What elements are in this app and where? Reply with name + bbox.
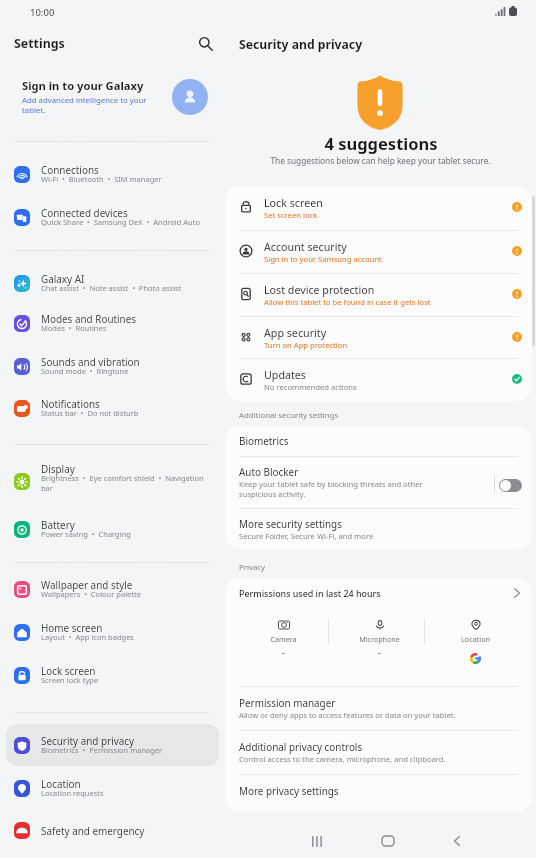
staticText: Lock screen bbox=[41, 664, 96, 677]
staticText: Additional security settings bbox=[239, 410, 339, 421]
staticText: App security bbox=[264, 326, 327, 341]
staticText: Security and privacy bbox=[239, 36, 363, 53]
staticText: Galaxy AI bbox=[41, 272, 85, 285]
staticText: Sign in to your Galaxy bbox=[22, 78, 144, 93]
staticText: Secure Folder, Secure Wi-Fi, and more bbox=[239, 531, 374, 541]
button[interactable]: Lock screen bbox=[225, 186, 532, 230]
staticText: Layout • App icon badges bbox=[41, 632, 219, 642]
button[interactable]: Biometrics bbox=[225, 426, 532, 455]
staticText: Connected devices bbox=[41, 206, 128, 219]
button[interactable]: More privacy settings bbox=[225, 774, 532, 812]
button[interactable]: Permissions used in last 24 hours bbox=[225, 578, 532, 686]
staticText: Wi-Fi • Bluetooth • SIM manager bbox=[41, 174, 219, 184]
staticText: Biometrics • Permission manager bbox=[41, 745, 219, 755]
staticText: Home screen bbox=[41, 621, 103, 634]
button[interactable]: Home bbox=[367, 826, 409, 856]
staticText: Safety and emergency bbox=[41, 824, 145, 837]
staticText: Allow or deny apps to access features or… bbox=[239, 710, 456, 720]
staticText: Brightness • Eye comfort shield • Naviga… bbox=[41, 473, 217, 493]
staticText: Set screen lock bbox=[264, 210, 318, 220]
staticText: 10:00 bbox=[30, 6, 55, 19]
staticText: Sound mode • Ringtone bbox=[41, 366, 219, 376]
staticText: Auto Blocker bbox=[239, 465, 299, 478]
button[interactable]: Additional privacy controls bbox=[225, 730, 532, 774]
staticText: Security and privacy bbox=[41, 734, 135, 747]
staticText: More security settings bbox=[239, 517, 342, 530]
staticText: Keep your tablet safe by blocking threat… bbox=[239, 479, 437, 500]
staticText: Turn on App protection bbox=[264, 340, 348, 350]
button[interactable]: Display bbox=[6, 455, 219, 507]
staticText: Account security bbox=[264, 240, 347, 255]
staticText: Screen lock type bbox=[41, 675, 219, 685]
button[interactable]: Sign in to your Galaxy bbox=[8, 68, 217, 126]
staticText: Camera bbox=[270, 634, 297, 644]
button[interactable]: Auto Blocker toggle bbox=[499, 479, 522, 492]
staticText: Battery bbox=[41, 518, 75, 531]
button[interactable]: Wallpaper and style bbox=[6, 568, 219, 610]
button[interactable]: Sounds and vibration bbox=[6, 345, 219, 387]
button[interactable]: Auto Blocker bbox=[225, 456, 532, 508]
button[interactable]: Battery bbox=[6, 508, 219, 550]
button[interactable]: Permission manager bbox=[225, 686, 532, 730]
button[interactable]: Safety and emergency bbox=[6, 809, 219, 851]
button[interactable]: Back bbox=[436, 826, 478, 856]
button[interactable]: Search bbox=[193, 31, 218, 56]
staticText: Additional privacy controls bbox=[239, 740, 363, 753]
button[interactable]: Galaxy AI bbox=[6, 262, 219, 304]
staticText: Connections bbox=[41, 163, 99, 176]
button[interactable]: More security settings bbox=[225, 508, 532, 549]
button[interactable]: App security bbox=[225, 316, 532, 360]
button[interactable]: Recents bbox=[296, 826, 338, 856]
staticText: No recommended actions bbox=[264, 382, 357, 392]
staticText: Modes • Routines bbox=[41, 323, 219, 333]
button[interactable]: Lock screen bbox=[6, 654, 219, 696]
staticText: Chat assist • Note assist • Photo assist bbox=[41, 283, 219, 293]
staticText: Permission manager bbox=[239, 696, 336, 709]
staticText: Notifications bbox=[41, 397, 100, 410]
staticText: Lock screen bbox=[264, 196, 323, 211]
staticText: Power saving • Charging bbox=[41, 529, 219, 539]
staticText: Location requests bbox=[41, 788, 219, 798]
button[interactable]: Home screen bbox=[6, 611, 219, 653]
staticText: Sounds and vibration bbox=[41, 355, 140, 368]
staticText: Quick Share • Samsung DeX • Android Auto bbox=[41, 217, 219, 227]
staticText: Wallpaper and style bbox=[41, 578, 133, 591]
staticText: The suggestions below can help keep your… bbox=[270, 155, 491, 166]
button[interactable]: Lost device protection bbox=[225, 273, 532, 317]
staticText: Lost device protection bbox=[264, 283, 375, 298]
staticText: Sign in to your Samsung account bbox=[264, 254, 382, 264]
staticText: Add advanced intelligence to your tablet… bbox=[22, 95, 154, 115]
staticText: Allow this tablet to be found in case it… bbox=[264, 297, 431, 307]
staticText: Wallpapers • Colour palette bbox=[41, 589, 219, 599]
staticText: Location bbox=[461, 634, 490, 644]
button[interactable]: Connected devices bbox=[6, 196, 219, 238]
staticText: Status bar • Do not disturb bbox=[41, 408, 219, 418]
staticText: Settings bbox=[14, 35, 65, 52]
button[interactable]: Connections bbox=[6, 153, 219, 195]
staticText: Modes and Routines bbox=[41, 312, 137, 325]
button[interactable]: Security and privacy bbox=[6, 724, 219, 766]
staticText: Display bbox=[41, 462, 75, 475]
button[interactable]: Account security bbox=[225, 230, 532, 274]
staticText: Location bbox=[41, 777, 81, 790]
staticText: Privacy bbox=[239, 562, 266, 573]
staticText: Microphone bbox=[359, 634, 400, 644]
staticText: More privacy settings bbox=[239, 784, 339, 797]
button[interactable]: Notifications bbox=[6, 387, 219, 429]
staticText: 4 suggestions bbox=[324, 132, 438, 154]
button[interactable]: Modes and Routines bbox=[6, 302, 219, 344]
button[interactable]: Location bbox=[6, 767, 219, 809]
staticText: Updates bbox=[264, 368, 306, 383]
staticText: Permissions used in last 24 hours bbox=[239, 587, 381, 599]
staticText: Biometrics bbox=[239, 434, 289, 447]
staticText: Control access to the camera, microphone… bbox=[239, 754, 446, 764]
button[interactable]: Updates bbox=[225, 358, 532, 401]
